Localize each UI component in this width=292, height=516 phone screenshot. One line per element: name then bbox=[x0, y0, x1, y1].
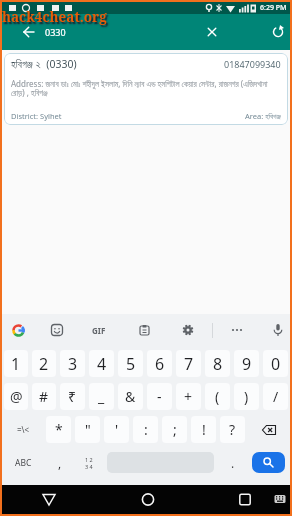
staticText: . bbox=[231, 455, 235, 471]
staticText: - bbox=[157, 387, 162, 406]
button[interactable]: ! bbox=[191, 416, 216, 443]
button[interactable] bbox=[16, 19, 42, 45]
button[interactable] bbox=[134, 486, 162, 513]
staticText: 9 bbox=[242, 353, 252, 375]
button[interactable] bbox=[133, 319, 155, 341]
button[interactable]: - bbox=[147, 383, 172, 410]
button[interactable] bbox=[249, 416, 288, 443]
staticText: # bbox=[39, 387, 49, 406]
staticText: 0330 bbox=[45, 26, 66, 38]
button[interactable]: 4 bbox=[89, 350, 114, 377]
button[interactable]: # bbox=[32, 383, 56, 410]
button[interactable] bbox=[270, 489, 290, 509]
button[interactable] bbox=[200, 20, 224, 44]
staticText: ( bbox=[215, 387, 220, 406]
staticText: + bbox=[184, 387, 193, 406]
staticText: , bbox=[58, 455, 62, 471]
staticText: " bbox=[85, 420, 91, 439]
staticText: @ bbox=[10, 387, 23, 406]
staticText: & bbox=[125, 387, 136, 406]
staticText: 1 2 bbox=[85, 456, 93, 463]
staticText: * bbox=[55, 420, 63, 439]
staticText: ! bbox=[202, 420, 206, 439]
button[interactable]: 1 2 bbox=[74, 446, 103, 479]
staticText: 0 bbox=[271, 353, 281, 375]
button[interactable]: হবিগঞ্জ ২ (0330) bbox=[4, 53, 288, 125]
staticText: hack4cheat.org bbox=[2, 8, 107, 26]
button[interactable] bbox=[177, 319, 199, 341]
button[interactable]: ( bbox=[205, 383, 230, 410]
button[interactable]: @ bbox=[4, 383, 28, 410]
button[interactable]: ' bbox=[104, 416, 129, 443]
staticText: _ bbox=[98, 387, 105, 406]
staticText: হবিগঞ্জ ২ (0330) bbox=[11, 57, 77, 71]
staticText: Address: জনাব ডাঃ মোঃ শহীদুল ইসলাম, দিনি… bbox=[11, 78, 281, 99]
button[interactable]: 1 bbox=[4, 350, 28, 377]
staticText: 6 bbox=[155, 353, 165, 375]
button[interactable] bbox=[266, 20, 290, 44]
staticText: 7 bbox=[184, 353, 194, 375]
staticText: 6:29 PM bbox=[260, 3, 287, 13]
button[interactable]: . bbox=[220, 449, 245, 476]
button[interactable]: & bbox=[118, 383, 143, 410]
button[interactable]: ABC bbox=[4, 449, 43, 476]
staticText: 4 bbox=[97, 353, 107, 375]
button[interactable]: ₹ bbox=[60, 383, 85, 410]
staticText: 3 bbox=[68, 353, 78, 375]
button[interactable]: 7 bbox=[176, 350, 201, 377]
button[interactable] bbox=[7, 319, 29, 341]
button[interactable] bbox=[35, 486, 63, 513]
staticText: ; bbox=[173, 420, 177, 439]
staticText: District: Sylhet bbox=[11, 111, 62, 121]
button[interactable] bbox=[231, 486, 259, 513]
staticText: 3 4 bbox=[85, 463, 93, 470]
button[interactable]: =\< bbox=[4, 416, 42, 443]
button[interactable]: , bbox=[47, 449, 72, 476]
button[interactable]: ; bbox=[162, 416, 187, 443]
button[interactable]: GIF bbox=[88, 319, 110, 341]
staticText: 01847099340 bbox=[224, 58, 281, 70]
button[interactable]: 3 bbox=[60, 350, 85, 377]
staticText: 5 bbox=[126, 353, 136, 375]
staticText: : bbox=[144, 420, 148, 439]
staticText: 1 bbox=[11, 353, 21, 375]
staticText: 8 bbox=[213, 353, 223, 375]
button[interactable] bbox=[46, 319, 68, 341]
button[interactable] bbox=[226, 319, 248, 341]
button[interactable]: / bbox=[263, 383, 288, 410]
staticText: ₹ bbox=[68, 387, 77, 406]
button[interactable]: * bbox=[46, 416, 71, 443]
staticText: ABC bbox=[15, 457, 32, 469]
button[interactable] bbox=[267, 319, 289, 341]
staticText: 2 bbox=[39, 353, 49, 375]
staticText: ? bbox=[229, 420, 236, 439]
button[interactable]: ) bbox=[234, 383, 259, 410]
button[interactable]: 0 bbox=[263, 350, 288, 377]
button[interactable]: _ bbox=[89, 383, 114, 410]
button[interactable]: 8 bbox=[205, 350, 230, 377]
staticText: ' bbox=[115, 420, 119, 439]
button[interactable]: ? bbox=[220, 416, 245, 443]
button[interactable]: " bbox=[75, 416, 100, 443]
button[interactable]: : bbox=[133, 416, 158, 443]
staticText: Area: হবিগঞ্জ bbox=[245, 111, 281, 121]
button[interactable]: 6 bbox=[147, 350, 172, 377]
staticText: GIF bbox=[92, 325, 106, 336]
staticText: ) bbox=[244, 387, 249, 406]
button[interactable]: 2 bbox=[32, 350, 56, 377]
button[interactable]: 9 bbox=[234, 350, 259, 377]
button[interactable] bbox=[252, 452, 285, 473]
button[interactable]: 5 bbox=[118, 350, 143, 377]
staticText: =\< bbox=[17, 424, 30, 435]
staticText: / bbox=[273, 387, 279, 406]
button[interactable]: + bbox=[176, 383, 201, 410]
